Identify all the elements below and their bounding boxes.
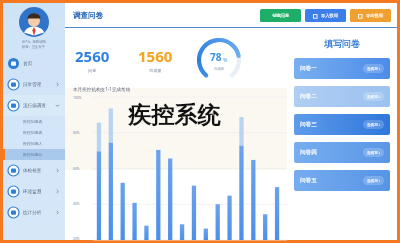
staticText: 完成量 bbox=[149, 68, 162, 73]
staticText: 职务: 卫生专干 bbox=[22, 44, 46, 49]
staticText: 80% bbox=[73, 130, 80, 134]
button[interactable]: 问卷二 bbox=[294, 86, 390, 107]
button[interactable]: 统计分析 bbox=[3, 202, 65, 223]
button[interactable]: 疾控问卷表 bbox=[3, 116, 65, 127]
staticText: 首页 bbox=[23, 61, 33, 67]
button[interactable]: 问卷四 bbox=[294, 142, 390, 163]
staticText: 流行病调查 bbox=[23, 103, 46, 109]
staticText: 调查问卷 bbox=[73, 11, 103, 20]
staticText: 疾控问卷人 bbox=[23, 141, 43, 146]
staticText: 疾控问卷台 bbox=[23, 152, 43, 157]
button[interactable]: 体检检查 bbox=[3, 160, 65, 181]
button[interactable]: 创建问卷 bbox=[260, 9, 301, 22]
button[interactable]: 疾控问卷台 bbox=[3, 149, 65, 160]
staticText: 60% bbox=[73, 166, 80, 170]
staticText: 问卷 bbox=[88, 68, 97, 73]
staticText: 完成率 bbox=[214, 67, 225, 71]
staticText: 疾控系统 bbox=[128, 101, 220, 130]
staticText: 疾控问卷表 bbox=[23, 130, 43, 135]
staticText: 问卷一 bbox=[300, 65, 317, 72]
staticText: 去填写 › bbox=[367, 122, 380, 127]
button[interactable]: 疾控问卷人 bbox=[3, 138, 65, 149]
staticText: 2560 bbox=[75, 46, 110, 66]
staticText: 统计分析 bbox=[23, 210, 42, 216]
staticText: 日常管理 bbox=[23, 82, 42, 88]
staticText: 问卷四 bbox=[300, 149, 317, 156]
button[interactable]: 流行病调查 bbox=[3, 95, 65, 116]
button[interactable]: 日常管理 bbox=[3, 74, 65, 95]
staticText: 创建问卷 bbox=[272, 13, 290, 18]
staticText: 本月疾控机构支1-1完成考核 bbox=[73, 86, 131, 92]
staticText: 1560 bbox=[138, 46, 173, 66]
staticText: 去填写 › bbox=[367, 150, 380, 155]
staticText: 体检检查 bbox=[23, 168, 42, 174]
staticText: 去填写 › bbox=[367, 94, 380, 99]
staticText: 填写问卷 bbox=[324, 38, 360, 49]
staticText: % bbox=[222, 57, 228, 64]
staticText: 问卷五 bbox=[300, 177, 317, 184]
staticText: 去填写 › bbox=[367, 178, 380, 183]
staticText: 导出数据 bbox=[366, 13, 384, 18]
staticText: 去填写 › bbox=[367, 66, 380, 71]
staticText: 100% bbox=[73, 95, 82, 99]
button[interactable]: 疾控问卷表 bbox=[3, 127, 65, 138]
button[interactable]: 导入数据 bbox=[305, 9, 346, 22]
button[interactable]: 问卷三 bbox=[294, 114, 390, 135]
staticText: 疾控问卷表 bbox=[23, 119, 43, 124]
staticText: 问卷二 bbox=[300, 93, 317, 100]
button[interactable]: 首页 bbox=[3, 53, 65, 74]
button[interactable]: 问卷五 bbox=[294, 170, 390, 191]
staticText: 问卷三 bbox=[300, 121, 317, 128]
staticText: 40% bbox=[73, 201, 80, 205]
staticText: 78 bbox=[210, 50, 222, 64]
staticText: 20% bbox=[73, 236, 80, 240]
staticText: 导入数据 bbox=[321, 13, 339, 18]
staticText: 张*九 高院转院 bbox=[22, 39, 46, 44]
button[interactable]: 问卷一 bbox=[294, 58, 390, 79]
button[interactable]: 导出数据 bbox=[350, 9, 391, 22]
button[interactable]: 环境监测 bbox=[3, 181, 65, 202]
staticText: 环境监测 bbox=[23, 189, 42, 195]
